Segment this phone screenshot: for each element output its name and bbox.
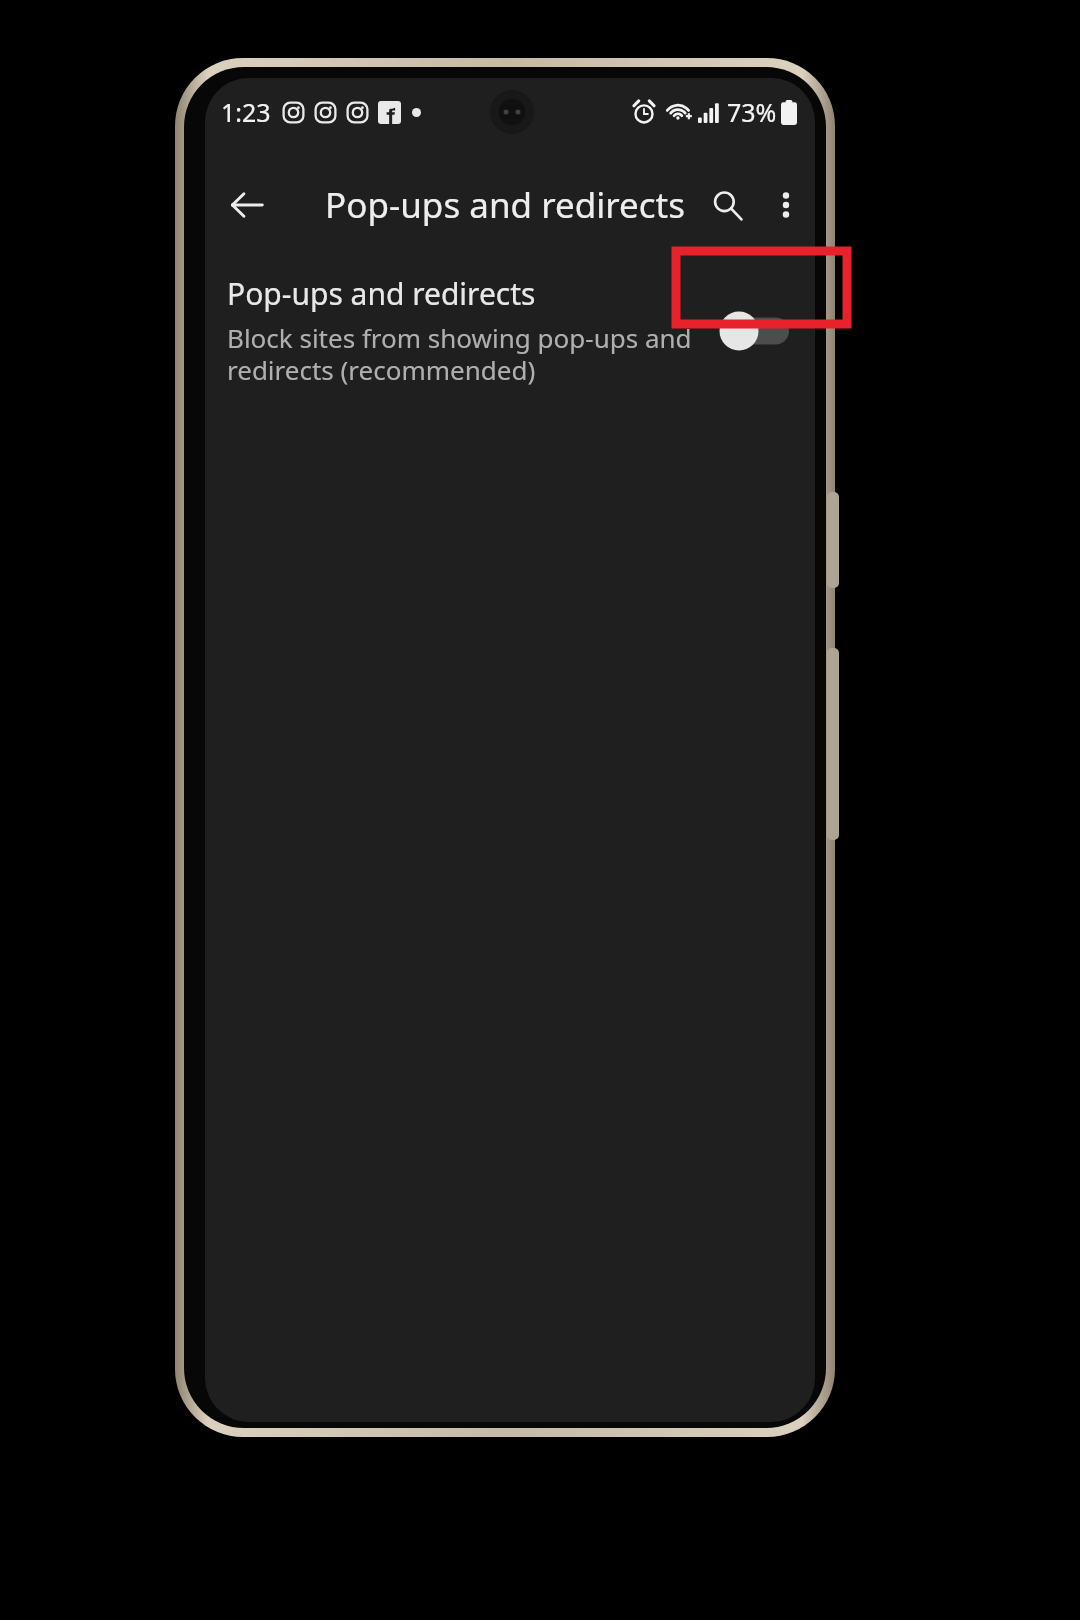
- button[interactable]: Search: [701, 179, 753, 231]
- staticText: Block sites from showing pop-ups and red…: [227, 320, 697, 388]
- staticText: 1:23: [221, 95, 271, 129]
- staticText: 73%: [727, 95, 777, 129]
- button[interactable]: More options: [760, 179, 812, 231]
- button[interactable]: Pop-ups and redirects: [205, 263, 815, 398]
- button[interactable]: Block pop-ups and redirects: [709, 302, 797, 360]
- staticText: Pop-ups and redirects: [227, 273, 536, 314]
- button[interactable]: Navigate up: [221, 179, 273, 231]
- staticText: Pop-ups and redirects: [325, 181, 685, 229]
